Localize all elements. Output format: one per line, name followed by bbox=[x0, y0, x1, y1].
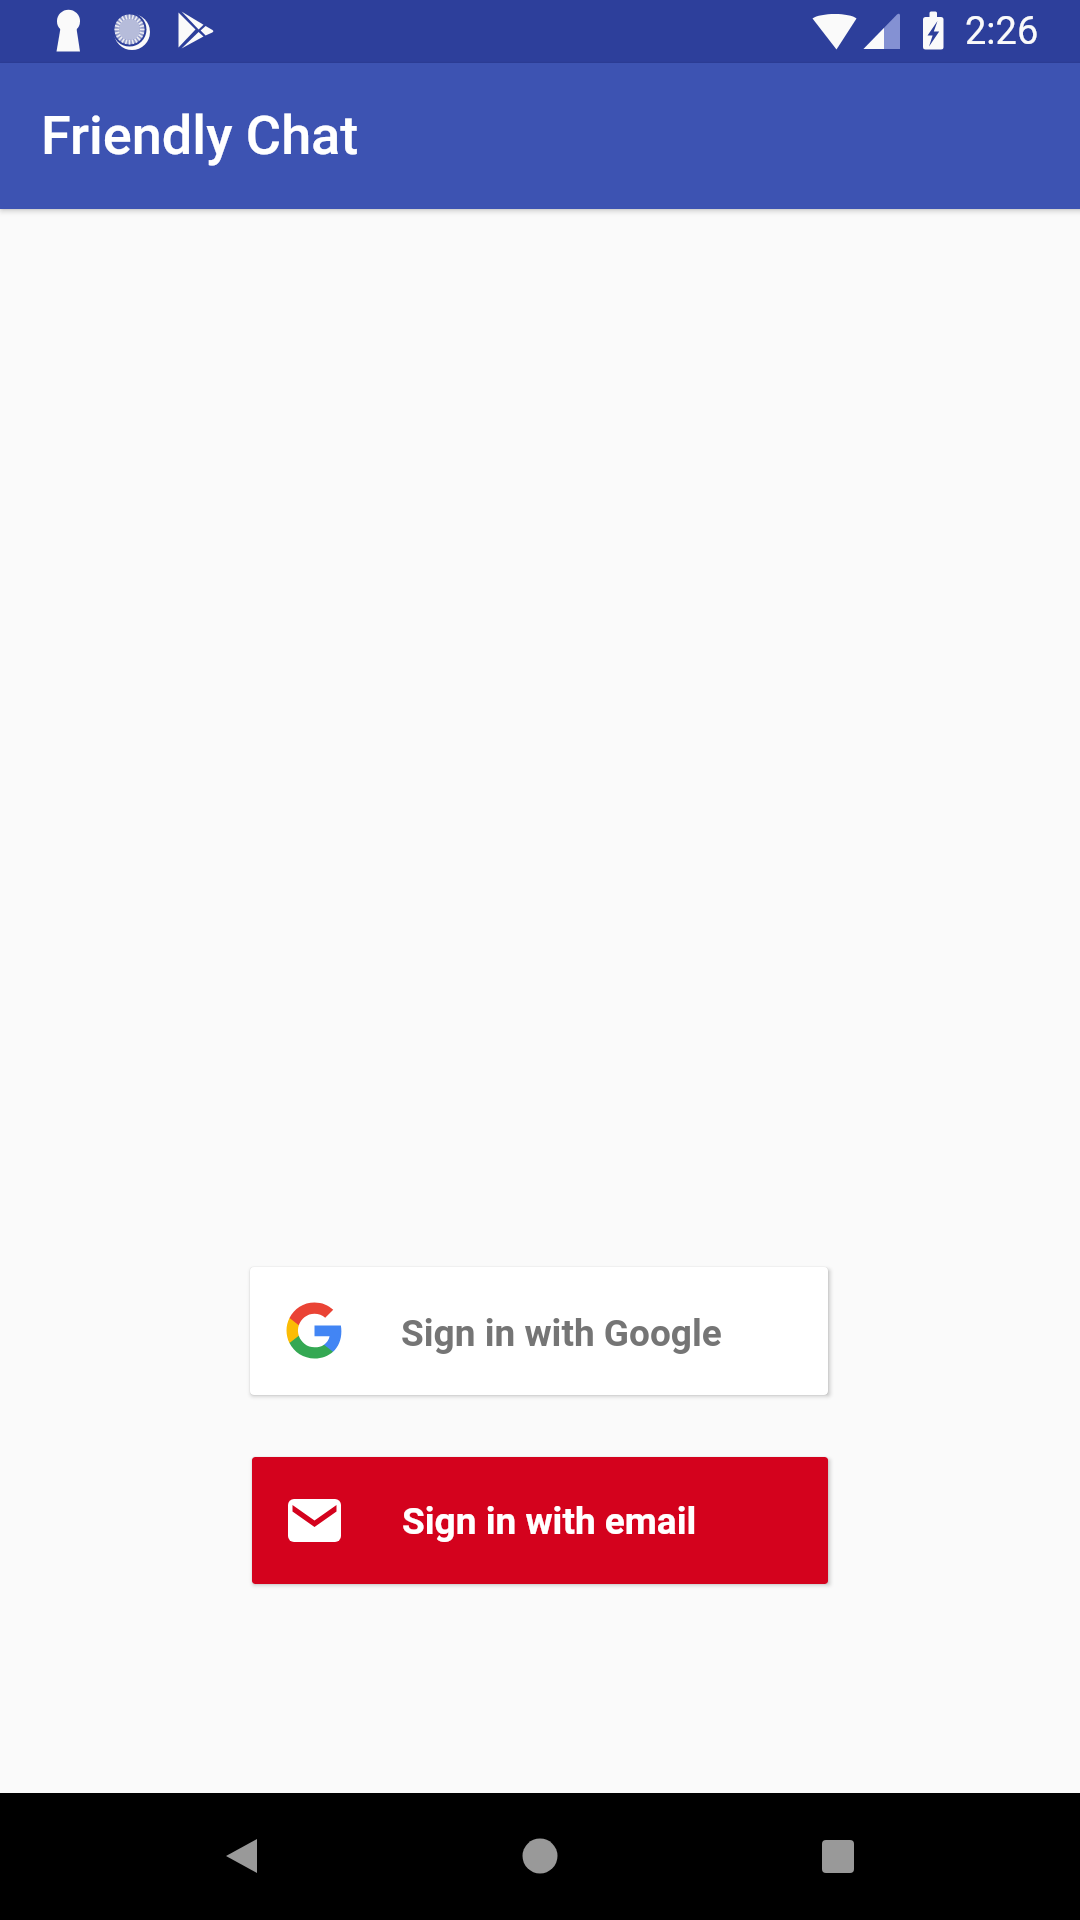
staticText: Friendly Chat bbox=[41, 104, 359, 167]
button[interactable]: Home bbox=[495, 1811, 585, 1901]
button[interactable]: Recent apps bbox=[793, 1811, 883, 1901]
button[interactable]: Sign in with Google bbox=[250, 1267, 828, 1395]
staticText: 2:26 bbox=[965, 9, 1039, 54]
button[interactable]: Back bbox=[196, 1811, 286, 1901]
staticText: Sign in with Google bbox=[401, 1312, 722, 1355]
button[interactable]: Sign in with email bbox=[252, 1457, 828, 1584]
staticText: Sign in with email bbox=[402, 1500, 697, 1543]
